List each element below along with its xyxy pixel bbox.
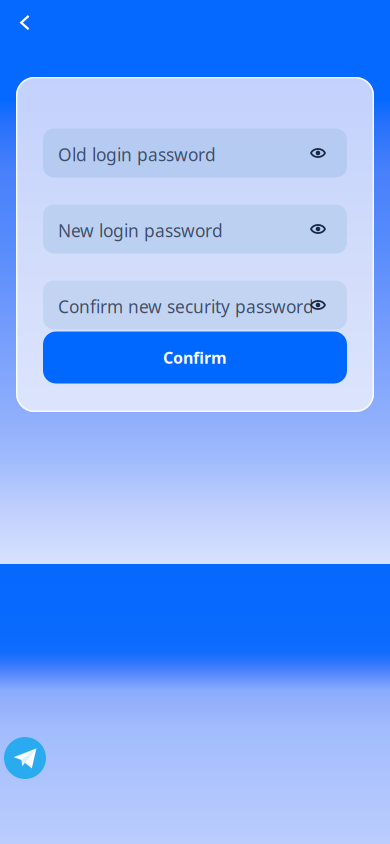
button[interactable]: Back bbox=[7, 5, 43, 41]
staticText: Old login password bbox=[58, 143, 216, 166]
staticText: New login password bbox=[58, 219, 223, 242]
button[interactable]: Toggle password visibility bbox=[303, 136, 333, 170]
button[interactable]: Confirm bbox=[43, 331, 347, 383]
button[interactable]: Toggle password visibility bbox=[303, 212, 333, 246]
button[interactable]: Telegram bbox=[4, 737, 46, 779]
staticText: Confirm bbox=[163, 347, 227, 368]
button[interactable]: Toggle password visibility bbox=[303, 288, 333, 322]
staticText: Confirm new security password bbox=[58, 295, 314, 318]
